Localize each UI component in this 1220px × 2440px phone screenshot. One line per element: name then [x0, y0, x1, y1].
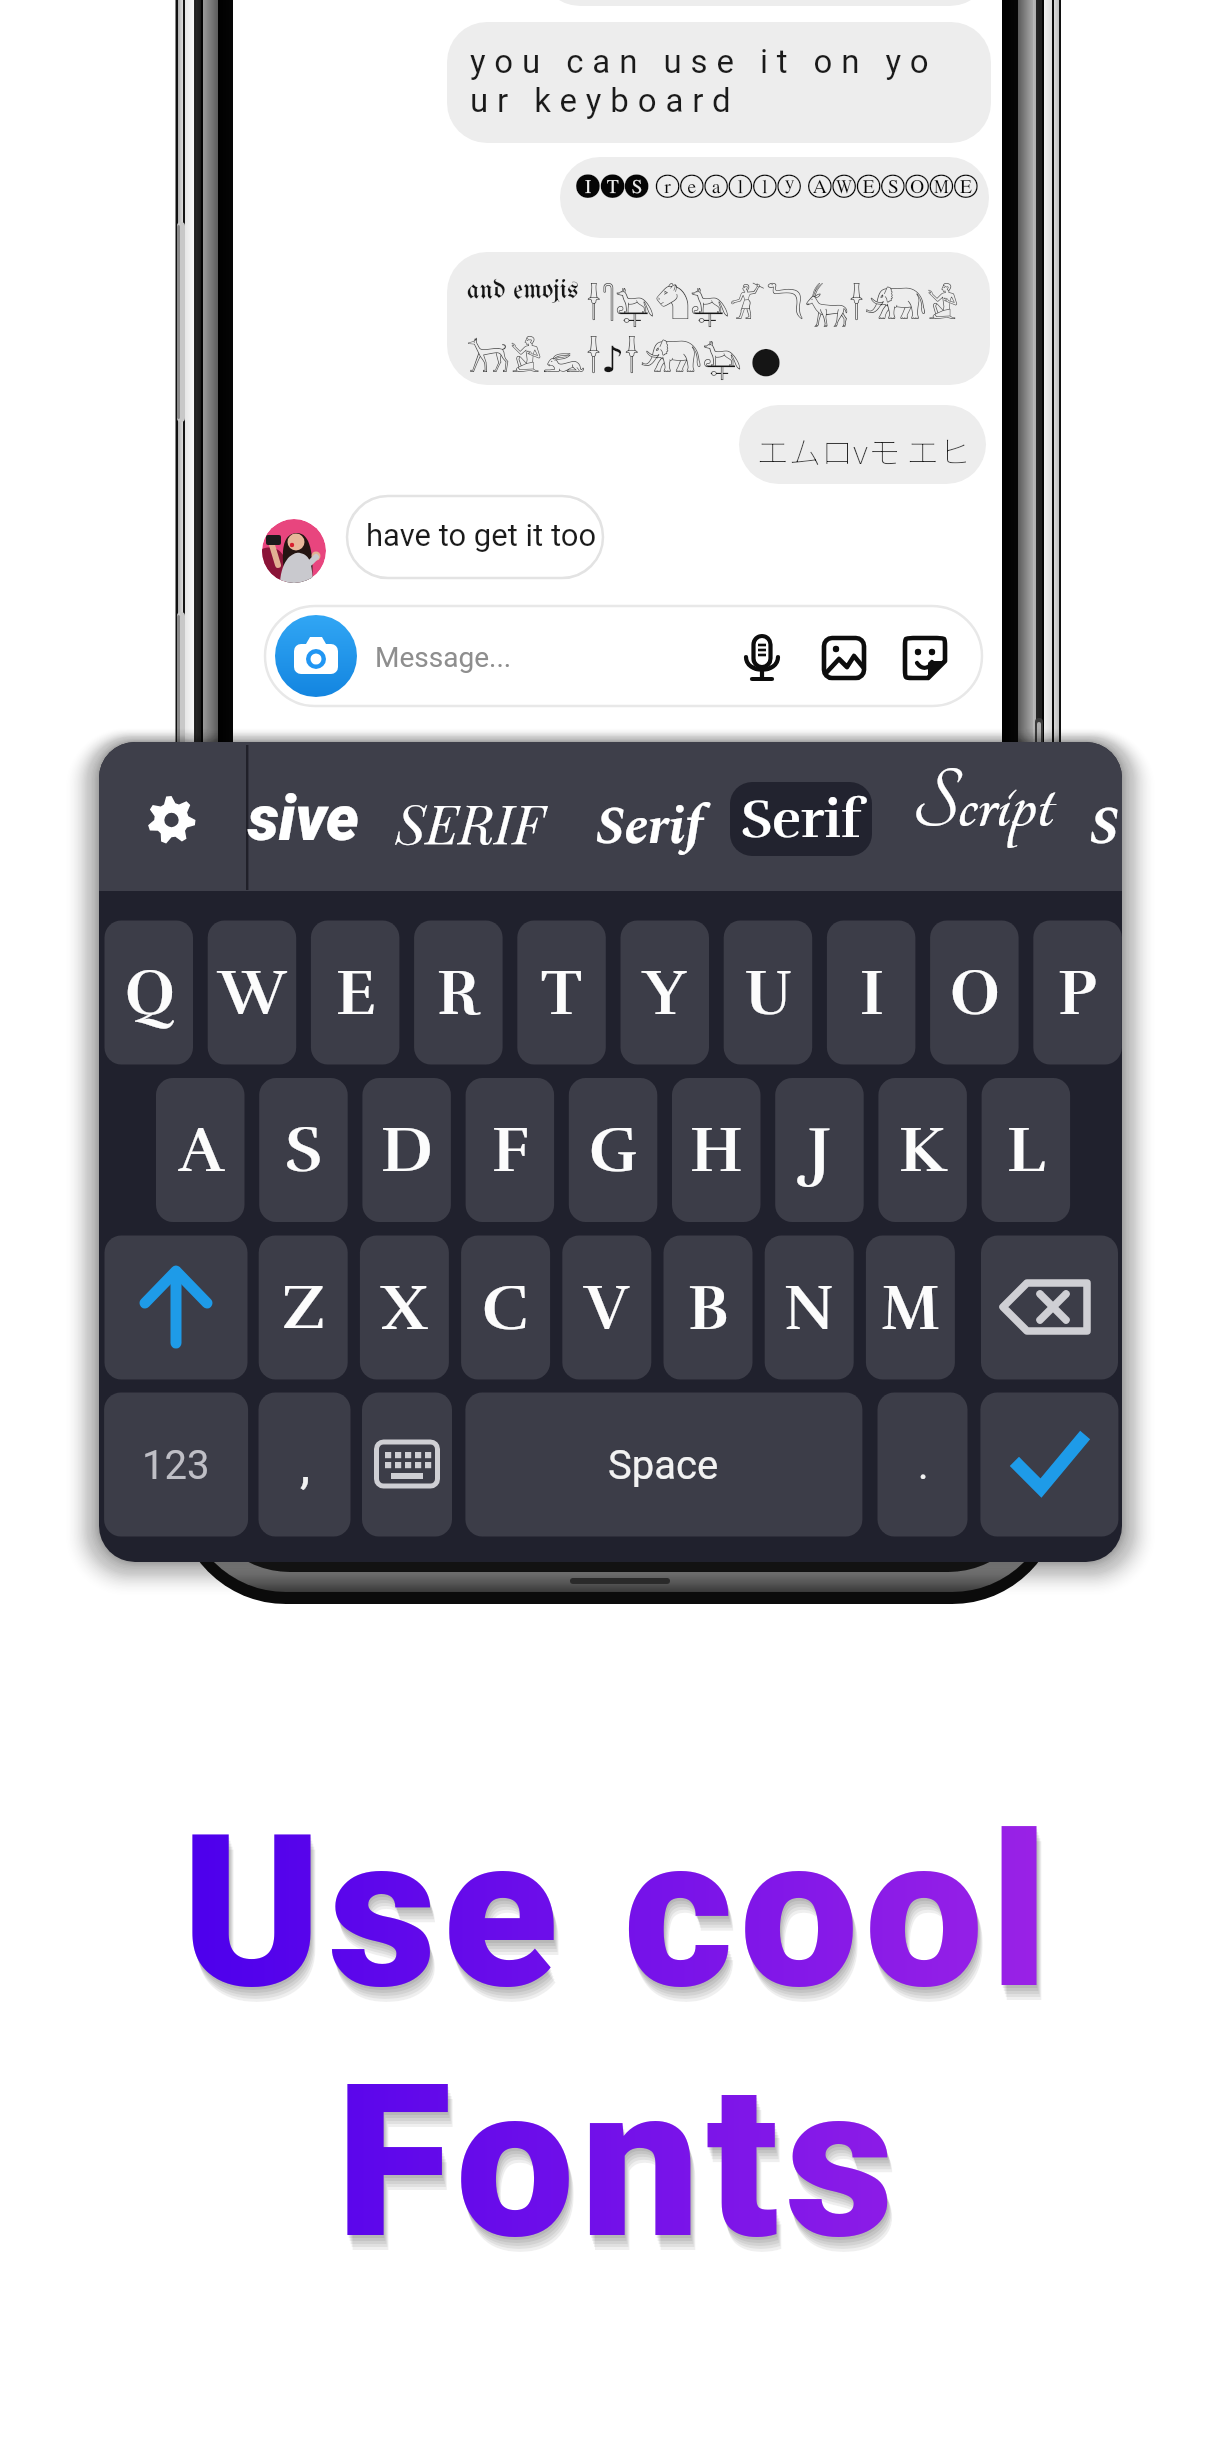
staticText: Use cool Fonts	[9, 1792, 1220, 2332]
button[interactable]: Y	[621, 921, 710, 1065]
button[interactable]: T	[517, 921, 606, 1065]
button[interactable]: X	[360, 1236, 449, 1380]
button[interactable]: Enter	[980, 1393, 1118, 1537]
staticText: Use cool Fonts	[12, 1801, 1220, 2341]
button[interactable]: G	[569, 1078, 658, 1222]
button[interactable]: C	[461, 1236, 550, 1380]
button[interactable]: U	[724, 921, 813, 1065]
staticText: P	[1058, 954, 1097, 1033]
staticText: .	[918, 1442, 929, 1489]
button[interactable]: Q	[105, 921, 194, 1065]
staticText: Y	[644, 954, 687, 1033]
staticText: M	[881, 1269, 941, 1348]
staticText: Use cool Fonts	[8, 1789, 1220, 2329]
staticText: R	[437, 954, 480, 1033]
button[interactable]: J	[775, 1078, 864, 1222]
staticText: S	[285, 1111, 322, 1190]
button[interactable]: Serif	[730, 782, 872, 856]
staticText: L	[1007, 1111, 1046, 1190]
button[interactable]: F	[466, 1078, 555, 1222]
button[interactable]: Space	[465, 1393, 862, 1537]
staticText: H	[690, 1111, 743, 1190]
button[interactable]: N	[765, 1236, 854, 1380]
staticText: K	[899, 1111, 947, 1190]
button[interactable]: .	[878, 1393, 968, 1537]
staticText: C	[482, 1269, 529, 1348]
button[interactable]: W	[208, 921, 297, 1065]
staticText: エムロvモ エヒ	[757, 427, 971, 473]
button[interactable]: P	[1033, 921, 1122, 1065]
staticText: E	[336, 954, 376, 1033]
button[interactable]: H	[672, 1078, 761, 1222]
staticText: Script	[912, 760, 1053, 848]
button[interactable]: D	[362, 1078, 451, 1222]
button[interactable]: ,	[259, 1393, 351, 1537]
button[interactable]: S	[259, 1078, 348, 1222]
staticText: you can use it on yo ur keyboard	[470, 42, 938, 120]
staticText: Serif	[741, 786, 862, 853]
button[interactable]: 123	[104, 1393, 248, 1537]
staticText: B	[688, 1269, 729, 1348]
button[interactable]: O	[930, 921, 1019, 1065]
staticText: N	[784, 1269, 835, 1348]
staticText: U	[745, 954, 792, 1033]
staticText: 🅘🅣🅢 ⓡⓔⓐⓛⓛⓨ ⒶⓌⒺⓈⓄⓂⒺ	[576, 172, 978, 198]
button[interactable]: R	[414, 921, 503, 1065]
button[interactable]: V	[562, 1236, 651, 1380]
button[interactable]: Backspace	[981, 1236, 1118, 1380]
staticText: D	[381, 1111, 433, 1190]
staticText: O	[950, 954, 1000, 1033]
staticText: ,	[300, 1435, 311, 1496]
button[interactable]: E	[311, 921, 400, 1065]
staticText: I	[860, 954, 884, 1033]
staticText: V	[585, 1269, 629, 1348]
button[interactable]: I	[827, 921, 916, 1065]
button[interactable]: K	[878, 1078, 967, 1222]
staticText: Space	[608, 1442, 719, 1489]
staticText: sive	[248, 782, 359, 855]
staticText: 𓃡𓀀𓃺𓌂♪𓌂𓃰𓃨 ●	[466, 324, 782, 383]
button[interactable]: M	[866, 1236, 955, 1380]
staticText: Serif	[596, 786, 703, 868]
button[interactable]: Z	[259, 1236, 348, 1380]
button[interactable]: Switch keyboard	[362, 1393, 452, 1537]
staticText: Use cool Fonts	[11, 1798, 1220, 2338]
button[interactable]: A	[156, 1078, 245, 1222]
staticText: Q	[125, 954, 175, 1033]
staticText: Z	[282, 1269, 326, 1348]
staticText: S	[1090, 786, 1120, 868]
button[interactable]: B	[664, 1236, 753, 1380]
staticText: X	[381, 1269, 428, 1348]
staticText: SERIF	[396, 786, 544, 858]
staticText: F	[492, 1111, 529, 1190]
staticText: 123	[142, 1442, 210, 1489]
staticText: Use cool Fonts	[13, 1804, 1220, 2344]
staticText: 𓌂𓋿𓃨𓄇𓃨𓁄𓆓𓃲𓌂𓃰𓀀	[586, 271, 959, 330]
staticText: T	[541, 954, 582, 1033]
staticText: J	[808, 1111, 831, 1190]
button[interactable]: Shift	[105, 1236, 248, 1380]
staticText: have to get it too	[366, 517, 597, 553]
staticText: and emojis	[467, 277, 579, 305]
staticText: G	[589, 1111, 638, 1190]
staticText: W	[219, 954, 287, 1033]
button[interactable]: L	[982, 1078, 1071, 1222]
staticText: Message...	[375, 641, 512, 674]
staticText: Use cool Fonts	[10, 1795, 1220, 2335]
staticText: A	[179, 1111, 223, 1190]
